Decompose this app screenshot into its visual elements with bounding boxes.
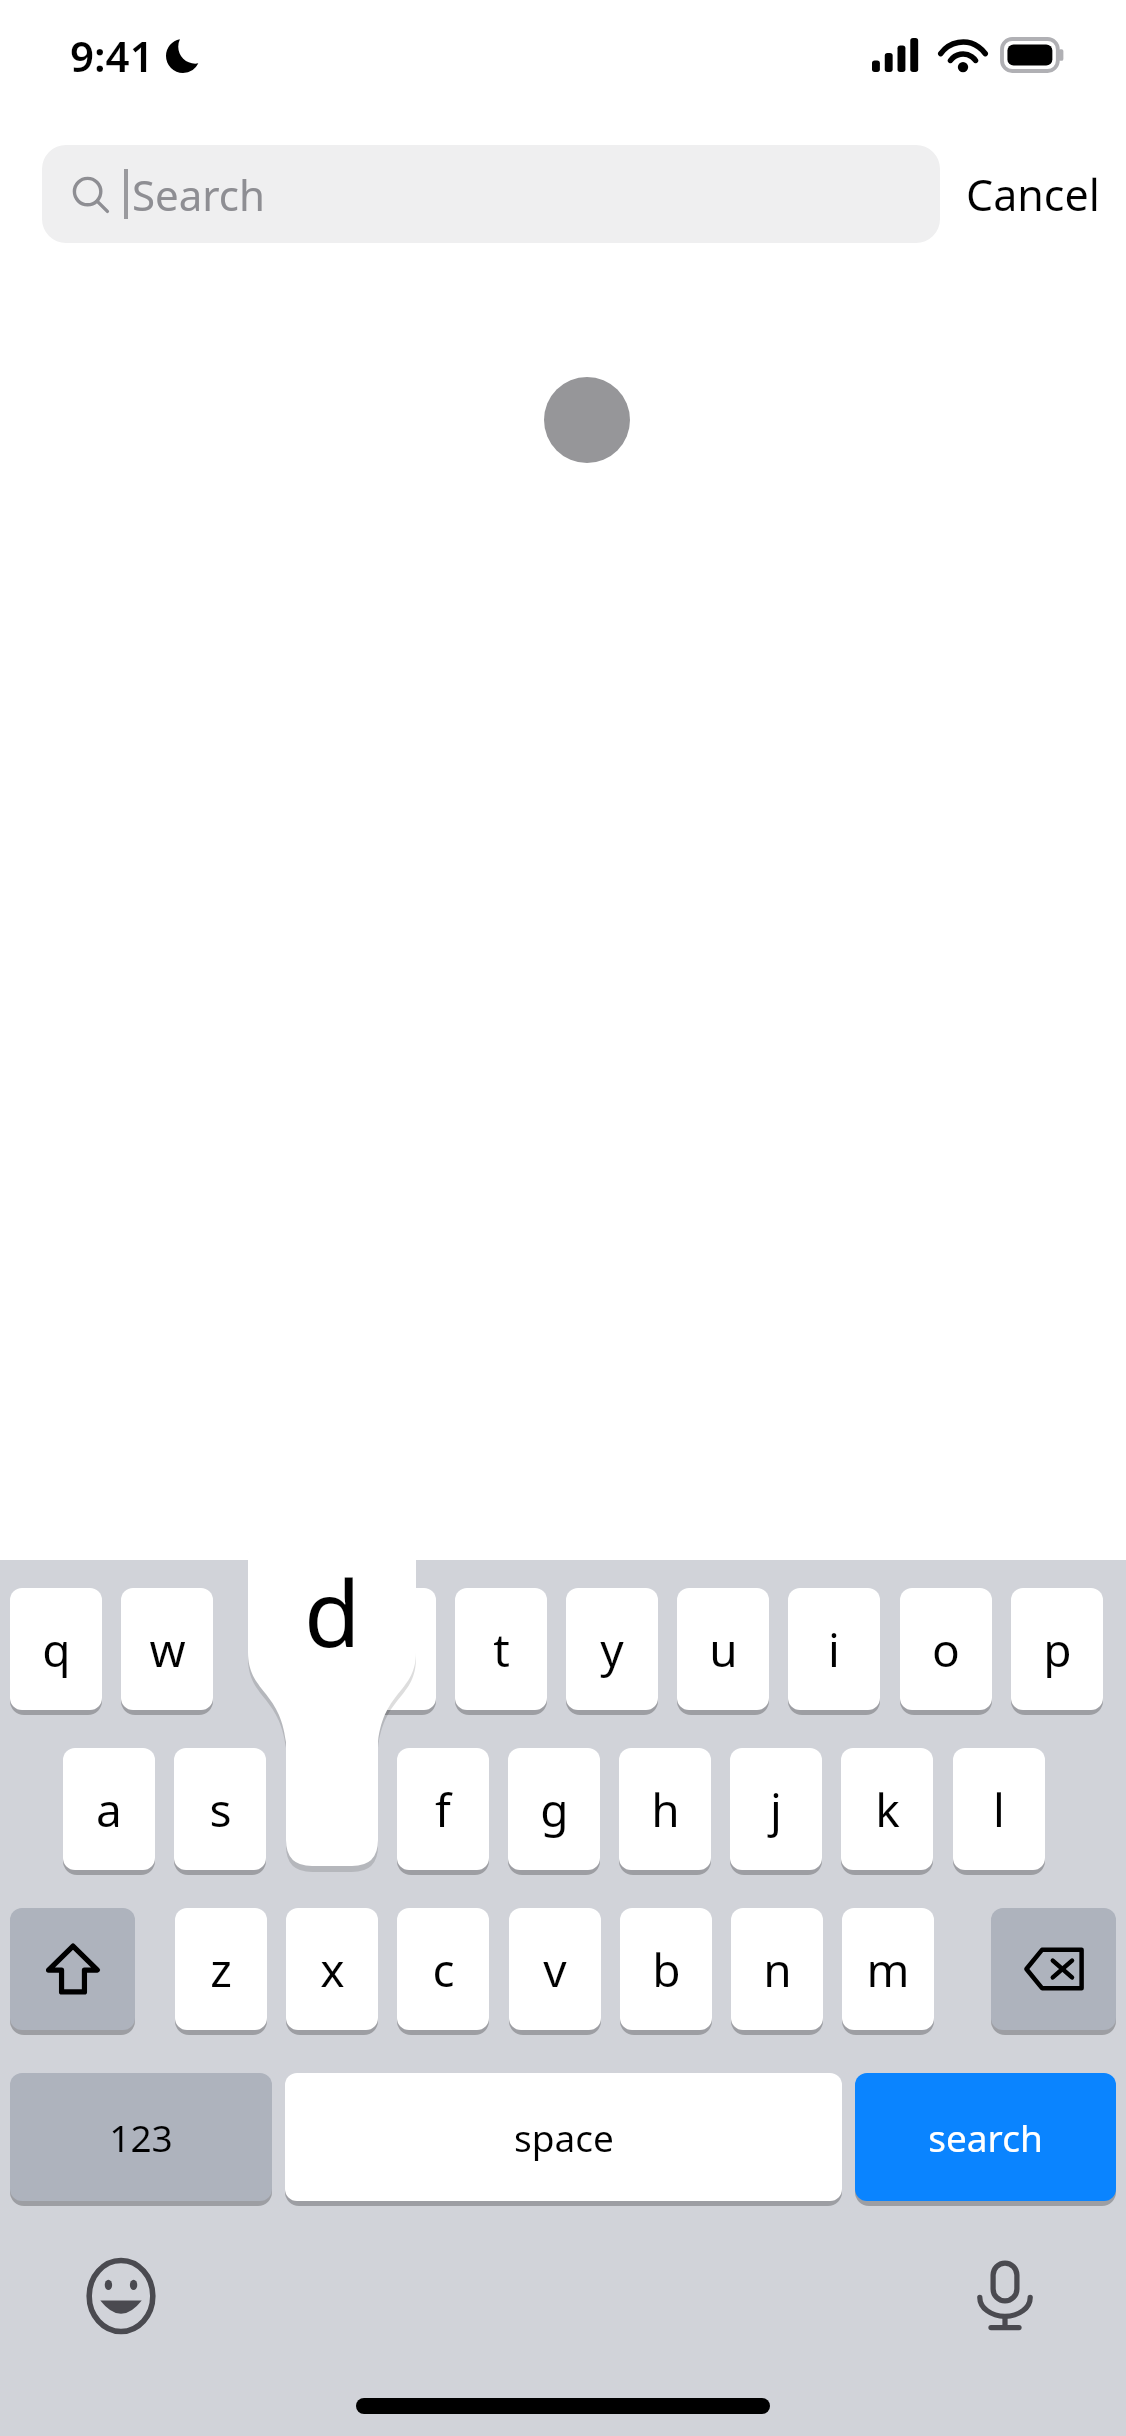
button[interactable]: h (619, 1748, 711, 1870)
button[interactable]: k (841, 1748, 933, 1870)
button[interactable]: g (508, 1748, 600, 1870)
button[interactable]: v (509, 1908, 601, 2030)
staticText: search (928, 2112, 1043, 2162)
staticText: w (149, 1618, 186, 1681)
button[interactable]: z (175, 1908, 267, 2030)
staticText: a (96, 1778, 122, 1841)
button[interactable]: m (842, 1908, 934, 2030)
button[interactable]: Backspace (991, 1908, 1116, 2030)
staticText: q (42, 1618, 71, 1681)
button[interactable]: p (1011, 1588, 1103, 1710)
button[interactable]: Profile (544, 377, 630, 463)
button[interactable]: y (566, 1588, 658, 1710)
staticText: i (828, 1618, 840, 1681)
button[interactable]: n (731, 1908, 823, 2030)
button[interactable]: l (953, 1748, 1045, 1870)
button[interactable]: t (455, 1588, 547, 1710)
button[interactable]: 123 (10, 2073, 272, 2201)
staticText: b (652, 1938, 681, 2001)
staticText: v (543, 1938, 567, 2001)
button[interactable]: w (121, 1588, 213, 1710)
button[interactable]: s (174, 1748, 266, 1870)
staticText: t (493, 1618, 510, 1681)
button[interactable]: r (344, 1588, 436, 1710)
staticText: n (763, 1938, 792, 2001)
button[interactable]: c (397, 1908, 489, 2030)
button[interactable]: space (285, 2073, 842, 2201)
staticText: c (432, 1938, 455, 2001)
staticText: z (210, 1938, 232, 2001)
button[interactable]: Search (42, 145, 940, 243)
staticText: 123 (109, 2112, 173, 2162)
button[interactable]: Shift (10, 1908, 135, 2030)
button[interactable]: search (855, 2073, 1116, 2201)
staticText: h (651, 1778, 680, 1841)
button[interactable]: Emoji (78, 2253, 164, 2339)
button[interactable]: o (900, 1588, 992, 1710)
button[interactable]: a (63, 1748, 155, 1870)
staticText: g (540, 1778, 569, 1841)
staticText: k (875, 1778, 900, 1841)
button[interactable]: u (677, 1588, 769, 1710)
staticText: p (1043, 1618, 1072, 1681)
staticText: f (435, 1778, 451, 1841)
staticText: Search (132, 166, 265, 223)
staticText: 9:41 (70, 27, 154, 84)
staticText: x (320, 1938, 345, 2001)
button[interactable]: j (730, 1748, 822, 1870)
staticText: o (932, 1618, 960, 1681)
button[interactable]: i (788, 1588, 880, 1710)
button[interactable]: q (10, 1588, 102, 1710)
button[interactable]: b (620, 1908, 712, 2030)
staticText: space (514, 2112, 614, 2162)
staticText: l (993, 1778, 1005, 1841)
staticText: d (304, 1549, 361, 1674)
button[interactable]: Cancel (940, 155, 1126, 234)
staticText: j (770, 1778, 782, 1841)
staticText: y (600, 1618, 624, 1681)
button[interactable]: Dictation (962, 2253, 1048, 2339)
button[interactable]: f (397, 1748, 489, 1870)
staticText: Cancel (966, 165, 1100, 224)
staticText: m (866, 1938, 910, 2001)
staticText: s (209, 1778, 232, 1841)
button[interactable]: x (286, 1908, 378, 2030)
staticText: u (709, 1618, 738, 1681)
